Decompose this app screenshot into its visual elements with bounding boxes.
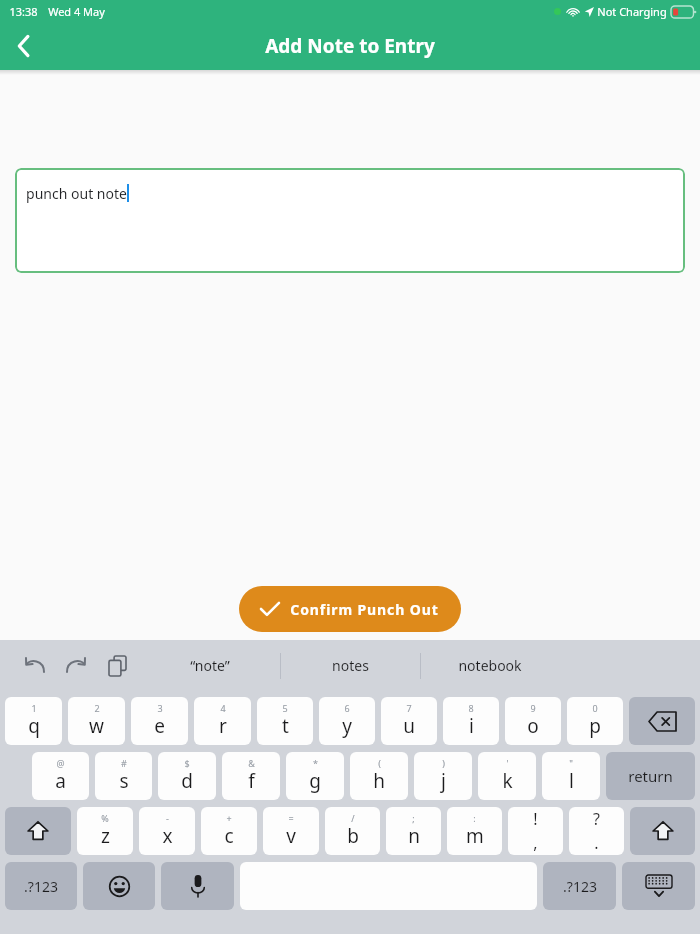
button[interactable]: * <box>286 752 344 800</box>
button[interactable]: # <box>95 752 152 800</box>
button[interactable]: ) <box>414 752 472 800</box>
button[interactable]: Shift <box>630 807 695 855</box>
staticText: .?123 <box>563 877 597 896</box>
button[interactable]: 8 <box>443 697 499 745</box>
button[interactable]: Backspace <box>629 697 695 745</box>
staticText: “note” <box>190 656 230 675</box>
button[interactable]: Confirm Punch Out <box>239 586 461 632</box>
staticText: 1 <box>31 702 37 714</box>
button[interactable]: Paste <box>100 649 134 683</box>
staticText: 4 <box>220 702 226 714</box>
button[interactable]: Hide keyboard <box>622 862 695 910</box>
staticText: g <box>309 768 321 794</box>
staticText: return <box>628 766 673 786</box>
staticText: b <box>347 823 359 849</box>
button[interactable]: notebook <box>420 640 560 691</box>
staticText: z <box>101 823 110 849</box>
staticText: v <box>286 823 296 849</box>
staticText: a <box>55 768 66 794</box>
staticText: j <box>441 768 446 794</box>
button[interactable]: notes <box>280 640 420 691</box>
staticText: 5 <box>282 702 288 714</box>
button[interactable]: = <box>263 807 319 855</box>
button[interactable]: ( <box>350 752 408 800</box>
button[interactable]: $ <box>158 752 216 800</box>
staticText: i <box>469 713 474 739</box>
staticText: x <box>162 823 173 849</box>
button[interactable]: Undo <box>18 649 52 683</box>
staticText: h <box>373 768 385 794</box>
staticText: # <box>121 757 127 769</box>
button[interactable]: .?123 <box>5 862 77 910</box>
staticText: Confirm Punch Out <box>290 600 439 619</box>
staticText: * <box>313 757 318 769</box>
staticText: notebook <box>458 656 522 675</box>
staticText: l <box>569 768 574 794</box>
button[interactable]: Back <box>0 22 48 70</box>
button[interactable]: Dictation <box>161 862 234 910</box>
button[interactable]: & <box>222 752 280 800</box>
staticText: - <box>166 812 169 824</box>
button[interactable]: Emoji <box>83 862 155 910</box>
button[interactable]: / <box>325 807 380 855</box>
staticText: punch out note <box>26 184 127 203</box>
staticText: c <box>224 823 234 849</box>
staticText: : <box>473 812 476 824</box>
staticText: ; <box>412 812 415 824</box>
staticText: = <box>288 812 294 824</box>
button[interactable]: 1 <box>5 697 62 745</box>
button[interactable]: % <box>77 807 133 855</box>
button[interactable]: ' <box>478 752 536 800</box>
staticText: k <box>502 768 513 794</box>
staticText: s <box>119 768 129 794</box>
staticText: Wed 4 May <box>48 4 105 19</box>
button[interactable]: Redo <box>59 649 93 683</box>
staticText: w <box>89 713 104 739</box>
staticText: q <box>28 713 40 739</box>
staticText: + <box>226 812 232 824</box>
button[interactable]: 5 <box>257 697 313 745</box>
staticText: 13:38 <box>9 4 38 19</box>
staticText: notes <box>332 656 369 675</box>
staticText: f <box>248 768 255 794</box>
staticText: $ <box>184 757 190 769</box>
staticText: 8 <box>468 702 474 714</box>
staticText: y <box>342 713 352 739</box>
button[interactable]: punch out note <box>15 168 685 273</box>
button[interactable]: 9 <box>505 697 561 745</box>
button[interactable]: .?123 <box>543 862 616 910</box>
button[interactable]: 7 <box>381 697 437 745</box>
staticText: % <box>101 812 109 824</box>
staticText: 0 <box>592 702 598 714</box>
staticText: . <box>594 832 599 854</box>
staticText: p <box>589 713 601 739</box>
staticText: 7 <box>406 702 412 714</box>
button[interactable]: + <box>201 807 257 855</box>
button[interactable]: ? <box>569 807 624 855</box>
staticText: / <box>351 812 355 824</box>
button[interactable]: Shift <box>5 807 71 855</box>
button[interactable]: 0 <box>567 697 623 745</box>
button[interactable]: : <box>447 807 502 855</box>
staticText: 6 <box>344 702 350 714</box>
button[interactable]: @ <box>32 752 89 800</box>
button[interactable]: return <box>606 752 695 800</box>
staticText: Add Note to Entry <box>265 33 435 59</box>
button[interactable]: 2 <box>68 697 125 745</box>
staticText: ) <box>442 757 445 769</box>
button[interactable]: 4 <box>194 697 251 745</box>
staticText: ? <box>593 808 600 830</box>
button[interactable]: ! <box>508 807 563 855</box>
staticText: Not Charging <box>597 4 667 19</box>
staticText: & <box>248 757 255 769</box>
staticText: r <box>219 713 227 739</box>
button[interactable]: - <box>139 807 195 855</box>
staticText: u <box>403 713 415 739</box>
button[interactable]: " <box>542 752 600 800</box>
button[interactable]: 6 <box>319 697 375 745</box>
button[interactable]: “note” <box>140 640 280 691</box>
button[interactable]: ; <box>386 807 441 855</box>
button[interactable]: 3 <box>131 697 188 745</box>
staticText: " <box>569 757 573 769</box>
